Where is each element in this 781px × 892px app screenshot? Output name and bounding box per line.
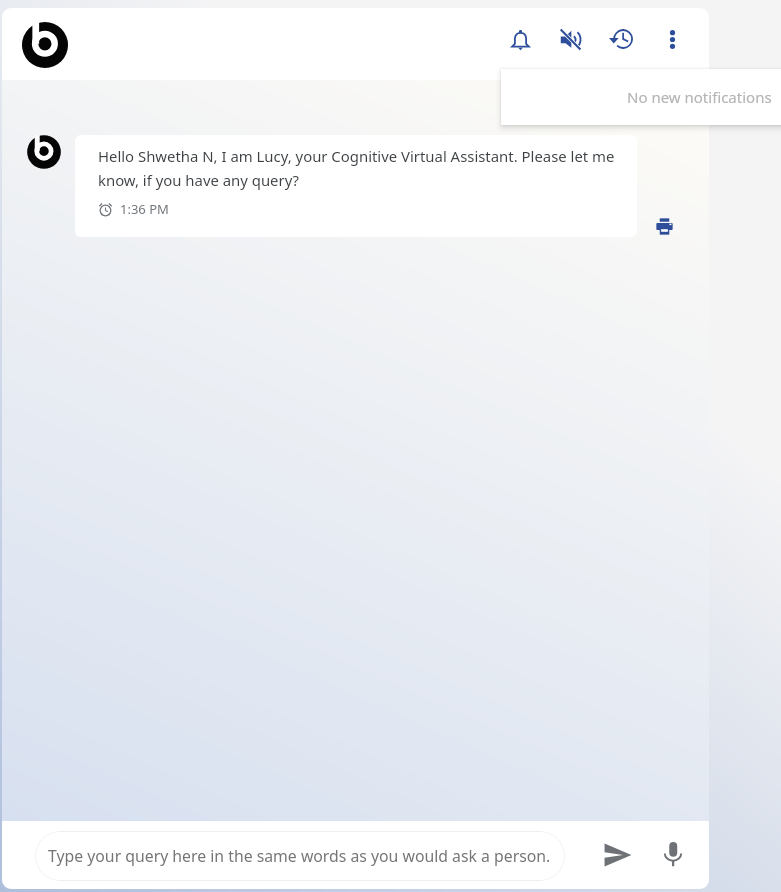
button[interactable]: Print [648, 210, 680, 242]
button[interactable]: Mute [549, 18, 593, 62]
button[interactable]: Voice input [651, 832, 695, 876]
staticText: Hello Shwetha N, I am Lucy, your Cogniti… [98, 146, 615, 190]
staticText: 1:36 PM [120, 200, 169, 218]
button[interactable]: More options [650, 17, 694, 61]
button[interactable]: Type your query here in the same words a… [35, 831, 565, 881]
button[interactable]: Notifications [498, 18, 542, 62]
button[interactable]: No new notifications [501, 69, 781, 125]
staticText: Type your query here in the same words a… [48, 845, 551, 867]
button[interactable]: Send [596, 833, 640, 877]
button[interactable]: History [599, 17, 643, 61]
staticText: No new notifications [627, 87, 772, 107]
